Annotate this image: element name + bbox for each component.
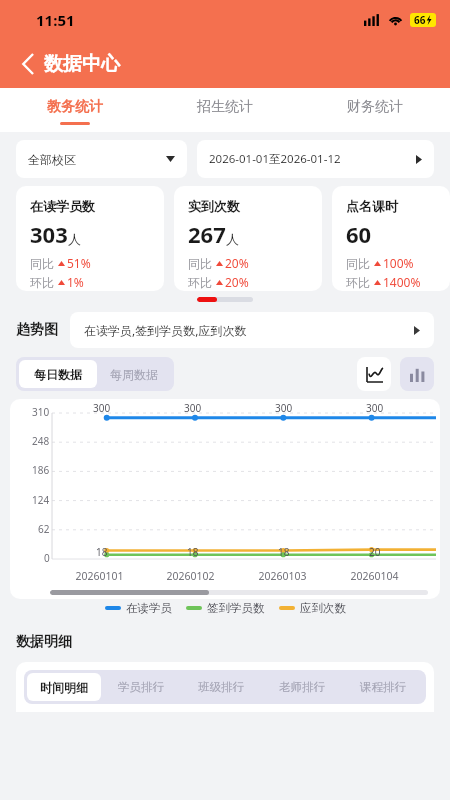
staticText: 环比 — [346, 275, 370, 290]
staticText: 303 — [30, 219, 68, 249]
staticText: 18 — [278, 545, 290, 559]
staticText: 实到次数 — [188, 198, 240, 214]
button[interactable]: 全部校区 — [16, 140, 187, 178]
staticText: 趋势图 — [16, 321, 58, 339]
button[interactable]: 教务统计 — [0, 88, 150, 132]
staticText: 186 — [32, 463, 50, 477]
staticText: 在读学员 — [126, 601, 172, 615]
button[interactable]: Line chart — [357, 357, 391, 391]
staticText: 每日数据 — [34, 367, 82, 382]
staticText: 教务统计 — [47, 98, 103, 116]
staticText: 20260101 — [75, 569, 124, 583]
staticText: 每周数据 — [110, 367, 158, 382]
button[interactable]: 点名课时 — [332, 186, 450, 291]
staticText: 310 — [32, 405, 50, 419]
button[interactable]: 学员排行 — [101, 673, 181, 701]
staticText: 同比 — [30, 256, 54, 271]
staticText: 班级排行 — [198, 680, 244, 694]
button[interactable]: 每日数据 — [19, 360, 97, 388]
staticText: 全部校区 — [28, 152, 76, 167]
staticText: 签到学员数 — [207, 601, 265, 615]
button[interactable]: 实到次数 — [174, 186, 322, 291]
staticText: 20260104 — [350, 569, 399, 583]
button[interactable]: 班级排行 — [181, 673, 261, 701]
button[interactable]: 每周数据 — [97, 360, 171, 388]
staticText: 同比 — [346, 256, 370, 271]
staticText: 300 — [184, 401, 202, 415]
staticText: 应到次数 — [300, 601, 346, 615]
button[interactable]: 时间明细 — [27, 673, 101, 701]
staticText: 62 — [38, 522, 50, 536]
staticText: 100% — [383, 255, 414, 271]
staticText: 2026-01-01至2026-01-12 — [209, 151, 341, 167]
staticText: 18 — [96, 545, 108, 559]
button[interactable]: 老师排行 — [261, 673, 342, 701]
staticText: 20260103 — [258, 569, 307, 583]
staticText: 同比 — [188, 256, 212, 271]
button[interactable]: 2026-01-01至2026-01-12 — [197, 140, 434, 178]
staticText: 60 — [346, 219, 372, 249]
staticText: 人 — [226, 231, 239, 247]
button[interactable]: Bar chart — [400, 357, 434, 391]
button[interactable]: Back — [12, 48, 44, 80]
button[interactable]: 招生统计 — [150, 88, 300, 132]
staticText: 20260102 — [166, 569, 215, 583]
button[interactable]: 财务统计 — [300, 88, 450, 132]
staticText: 在读学员数 — [30, 198, 95, 214]
staticText: 267 — [188, 219, 226, 249]
button[interactable]: 课程排行 — [342, 673, 423, 701]
staticText: 环比 — [30, 275, 54, 290]
staticText: 18 — [187, 545, 199, 559]
staticText: 248 — [32, 434, 50, 448]
button[interactable]: 在读学员,签到学员数,应到次数 — [70, 312, 434, 348]
staticText: 数据明细 — [16, 633, 72, 651]
staticText: 66 — [414, 13, 426, 27]
staticText: 51% — [67, 255, 91, 271]
staticText: 20% — [225, 274, 249, 290]
staticText: 时间明细 — [40, 680, 88, 695]
staticText: 20 — [369, 545, 381, 559]
staticText: 20% — [225, 255, 249, 271]
staticText: 300 — [366, 401, 384, 415]
staticText: 学员排行 — [118, 680, 164, 694]
staticText: 0 — [44, 551, 50, 565]
staticText: 300 — [93, 401, 111, 415]
staticText: 1% — [67, 274, 84, 290]
staticText: 11:51 — [36, 10, 75, 30]
staticText: 环比 — [188, 275, 212, 290]
staticText: 财务统计 — [347, 98, 403, 116]
staticText: 点名课时 — [346, 198, 398, 214]
staticText: 招生统计 — [197, 98, 253, 116]
staticText: 课程排行 — [360, 680, 406, 694]
staticText: 1400% — [383, 274, 421, 290]
staticText: 人 — [68, 231, 81, 247]
staticText: 124 — [32, 493, 50, 507]
staticText: 老师排行 — [279, 680, 325, 694]
staticText: 300 — [275, 401, 293, 415]
staticText: 在读学员,签到学员数,应到次数 — [84, 322, 247, 338]
staticText: 数据中心 — [44, 52, 120, 76]
button[interactable]: 在读学员数 — [16, 186, 164, 291]
